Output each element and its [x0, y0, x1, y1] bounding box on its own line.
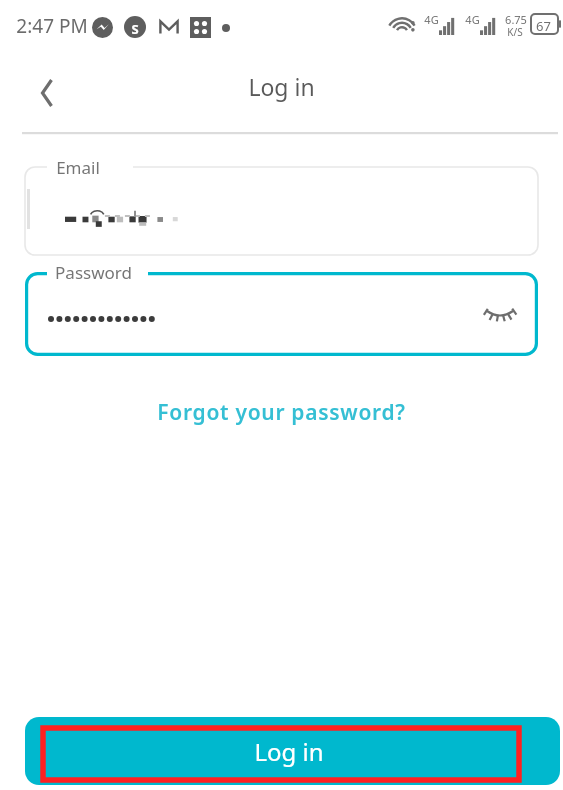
staticText: Log in	[254, 735, 324, 768]
button[interactable]: Back	[22, 68, 72, 118]
staticText: 67	[536, 17, 551, 35]
staticText: Log in	[248, 71, 315, 102]
staticText: Password	[55, 261, 132, 284]
staticText: K/S	[507, 25, 523, 39]
staticText: Forgot your password?	[157, 398, 406, 427]
button[interactable]: Forgot your password?	[0, 392, 563, 432]
button[interactable]: Log in	[25, 717, 560, 785]
button[interactable]: Email	[25, 167, 538, 255]
staticText: 2:47 PM	[16, 13, 88, 39]
button[interactable]: Password	[25, 272, 538, 356]
staticText: 6.75	[505, 12, 527, 27]
staticText: 4G	[424, 12, 439, 27]
staticText: S	[131, 20, 139, 38]
staticText: 4G	[465, 12, 480, 27]
staticText: Email	[56, 156, 100, 179]
button[interactable]: Hide password	[480, 294, 520, 334]
